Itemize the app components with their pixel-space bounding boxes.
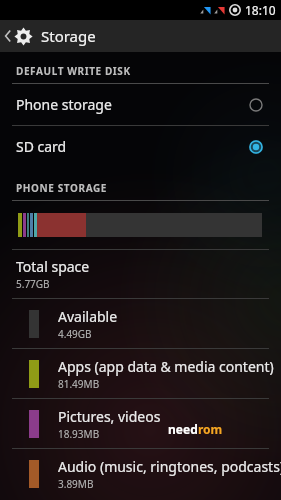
button[interactable]: Total space bbox=[0, 250, 281, 298]
staticText: 81.49MB bbox=[58, 377, 100, 391]
staticText: 18:10 bbox=[245, 2, 276, 18]
button[interactable]: SD card bbox=[0, 126, 281, 167]
staticText: DEFAULT WRITE DISK bbox=[16, 64, 131, 78]
button[interactable]: Phone storage bbox=[0, 84, 281, 125]
staticText: 18.93MB bbox=[58, 427, 100, 441]
staticText: Total space bbox=[16, 257, 90, 276]
staticText: rom bbox=[198, 421, 223, 437]
button[interactable]: Apps (app data & media content) bbox=[0, 349, 281, 398]
button[interactable]: Navigate up to Settings bbox=[0, 20, 281, 52]
staticText: PHONE STORAGE bbox=[16, 181, 108, 195]
staticText: Storage bbox=[41, 26, 96, 46]
staticText: Apps (app data & media content) bbox=[58, 357, 274, 376]
staticText: 3.89MB bbox=[58, 477, 94, 491]
staticText: need bbox=[168, 421, 198, 437]
staticText: Pictures, videos bbox=[58, 407, 161, 426]
button[interactable]: Available bbox=[0, 299, 281, 348]
staticText: Available bbox=[58, 307, 118, 326]
staticText: Phone storage bbox=[16, 95, 249, 114]
button[interactable]: Pictures, videos bbox=[0, 399, 281, 448]
button[interactable]: Audio (music, ringtones, podcasts) bbox=[0, 449, 281, 498]
staticText: 4.49GB bbox=[58, 327, 92, 341]
staticText: Audio (music, ringtones, podcasts) bbox=[58, 457, 281, 476]
staticText: SD card bbox=[16, 137, 249, 156]
staticText: 5.77GB bbox=[16, 277, 50, 291]
